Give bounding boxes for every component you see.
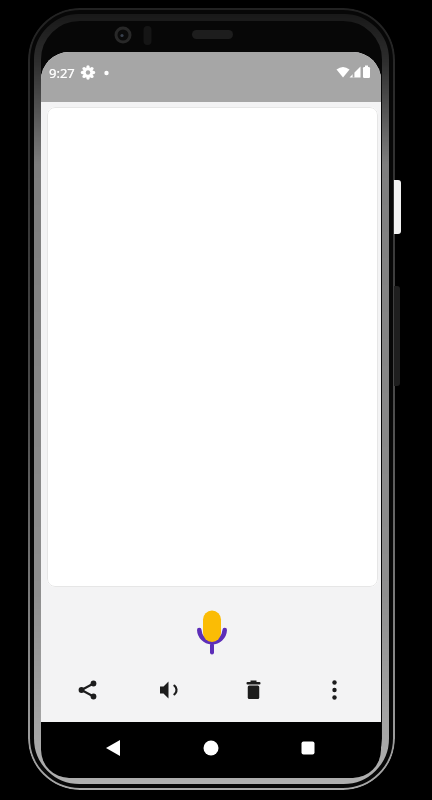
button[interactable] (154, 676, 183, 704)
staticText: 9:27 (49, 64, 75, 82)
button[interactable] (99, 734, 127, 762)
button[interactable] (73, 676, 102, 704)
button[interactable] (197, 734, 225, 762)
button[interactable] (191, 602, 231, 658)
button[interactable] (239, 676, 268, 704)
button[interactable] (320, 676, 349, 704)
button[interactable] (294, 734, 322, 762)
